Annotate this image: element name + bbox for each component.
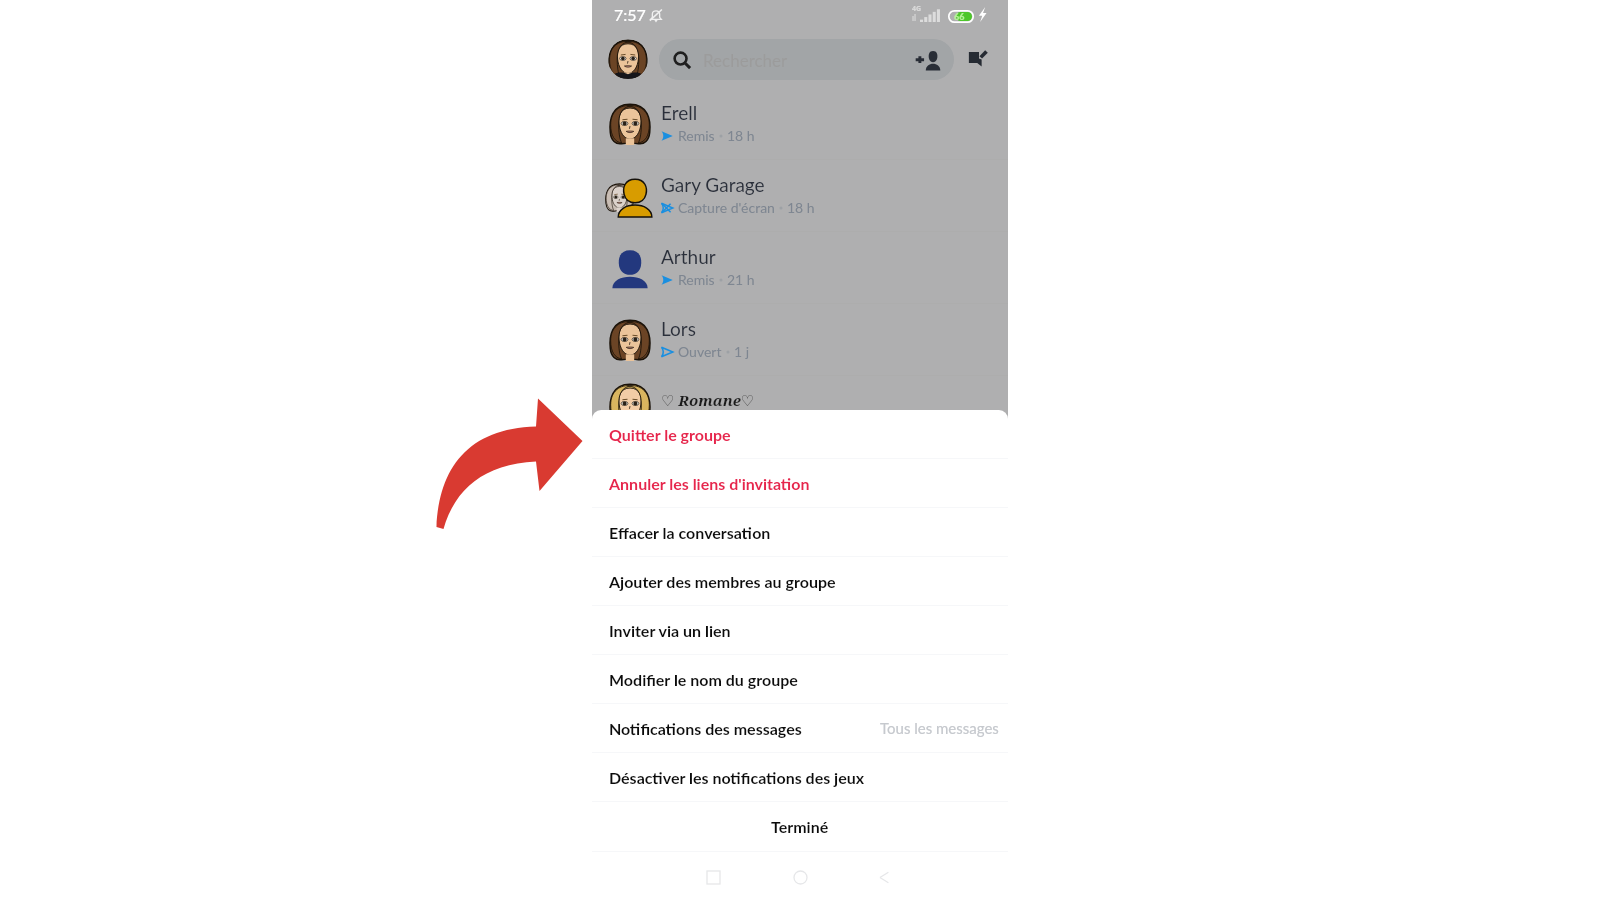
button[interactable]: Arthur: [592, 232, 1008, 304]
staticText: Gary Garage: [661, 173, 765, 196]
staticText: Notifications des messages: [609, 719, 802, 738]
staticText: 4G: [912, 4, 922, 14]
button[interactable]: Add friend: [914, 49, 942, 71]
staticText: Ajouter des membres au groupe: [609, 572, 836, 591]
button[interactable]: Annuler les liens d'invitation: [592, 459, 1008, 508]
button[interactable]: New chat: [964, 44, 994, 74]
staticText: Ouvert: [678, 343, 722, 360]
button[interactable]: Erell: [592, 88, 1008, 160]
staticText: Tous les messages: [880, 719, 999, 737]
staticText: Terminé: [771, 817, 829, 836]
staticText: ıl: [912, 12, 917, 23]
staticText: Lors: [661, 317, 696, 340]
button[interactable]: Désactiver les notifications des jeux: [592, 753, 1008, 802]
staticText: 18 h: [787, 199, 815, 216]
staticText: Arthur: [661, 245, 716, 268]
button[interactable]: Lors: [592, 304, 1008, 376]
staticText: Rechercher: [703, 50, 788, 70]
button[interactable]: Home: [778, 855, 822, 899]
staticText: 66: [954, 11, 965, 22]
staticText: Capture d'écran: [678, 199, 775, 216]
staticText: ♡ Romane♡: [661, 390, 755, 410]
staticText: Inviter via un lien: [609, 621, 731, 640]
staticText: Remis: [678, 271, 715, 288]
button[interactable]: ♡ Romane♡: [592, 376, 1008, 448]
button[interactable]: Terminé: [592, 802, 1008, 851]
button[interactable]: Quitter le groupe: [592, 410, 1008, 459]
button[interactable]: Ajouter des membres au groupe: [592, 557, 1008, 606]
staticText: Effacer la conversation: [609, 523, 771, 542]
staticText: Remis: [678, 127, 715, 144]
button[interactable]: Rechercher: [659, 39, 954, 80]
button[interactable]: Gary Garage: [592, 160, 1008, 232]
button[interactable]: Recents: [691, 855, 735, 899]
staticText: 7:57: [614, 5, 646, 24]
staticText: Erell: [661, 101, 698, 124]
button[interactable]: Modifier le nom du groupe: [592, 655, 1008, 704]
button[interactable]: Notifications des messages: [592, 704, 1008, 753]
staticText: Désactiver les notifications des jeux: [609, 768, 865, 787]
staticText: Annuler les liens d'invitation: [609, 474, 810, 493]
staticText: Modifier le nom du groupe: [609, 670, 798, 689]
staticText: 18 h: [727, 127, 755, 144]
button[interactable]: Inviter via un lien: [592, 606, 1008, 655]
button[interactable]: Profile: [608, 39, 648, 79]
staticText: 1 j: [734, 343, 750, 360]
staticText: 21 h: [727, 271, 755, 288]
staticText: Quitter le groupe: [609, 425, 731, 444]
button[interactable]: Effacer la conversation: [592, 508, 1008, 557]
